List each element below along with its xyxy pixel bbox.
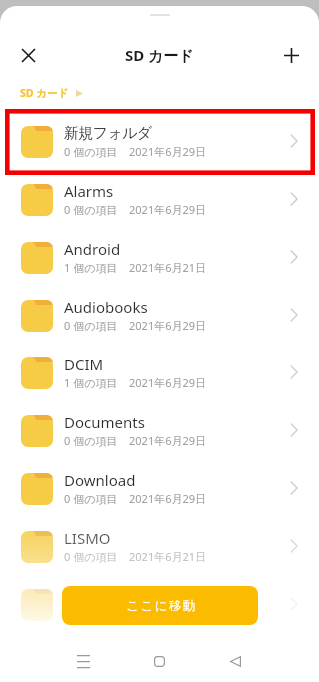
staticText: 2021年6月21日 (129, 260, 207, 275)
staticText: Movies (64, 586, 114, 606)
button[interactable]: Android (0, 228, 319, 286)
staticText: Download (64, 470, 136, 490)
staticText: 2021年6月29日 (129, 202, 207, 217)
button[interactable]: Alarms (0, 170, 319, 228)
staticText: 2021年6月29日 (129, 433, 207, 448)
staticText: 1 個の項目 (64, 260, 118, 275)
button[interactable]: LISMO (0, 517, 319, 575)
button[interactable]: Documents (0, 401, 319, 459)
button[interactable]: DCIM (0, 343, 319, 401)
button[interactable]: ここに移動 (62, 586, 258, 625)
staticText: 0 個の項目 (64, 318, 118, 333)
staticText: LISMO (64, 528, 111, 548)
button[interactable]: Home (139, 641, 180, 682)
staticText: 2021年6月29日 (129, 144, 207, 159)
staticText: 2021年6月29日 (129, 491, 207, 506)
button[interactable]: Download (0, 459, 319, 517)
staticText: ここに移動 (126, 598, 197, 614)
button[interactable]: Back (215, 641, 256, 682)
staticText: Audiobooks (64, 297, 148, 317)
staticText: 2021年6月29日 (129, 318, 207, 333)
staticText: 0 個の項目 (64, 144, 118, 159)
staticText: DCIM (64, 354, 104, 374)
staticText: Documents (64, 412, 145, 432)
button[interactable]: Recents (63, 641, 104, 682)
button[interactable]: Add (277, 41, 305, 69)
button[interactable]: 新規フォルダ (0, 112, 319, 170)
staticText: 0 個の項目 (64, 202, 118, 217)
staticText: Android (64, 239, 121, 259)
staticText: 0 個の項目 (64, 433, 118, 448)
staticText: 新規フォルダ (64, 124, 152, 143)
staticText: SD カード (125, 45, 194, 65)
staticText: 0 個の項目 (64, 491, 118, 506)
staticText: 0 個の項目 (64, 549, 118, 564)
staticText: 2021年6月21日 (129, 549, 207, 564)
button[interactable]: Audiobooks (0, 286, 319, 344)
staticText: 2021年6月21日 (129, 607, 207, 622)
staticText: Alarms (64, 181, 114, 201)
button[interactable]: SD カード (20, 86, 69, 100)
staticText: 1 個の項目 (64, 375, 118, 390)
button[interactable]: Movies (0, 575, 319, 633)
button[interactable]: Close (14, 41, 42, 69)
staticText: 2021年6月29日 (129, 375, 207, 390)
